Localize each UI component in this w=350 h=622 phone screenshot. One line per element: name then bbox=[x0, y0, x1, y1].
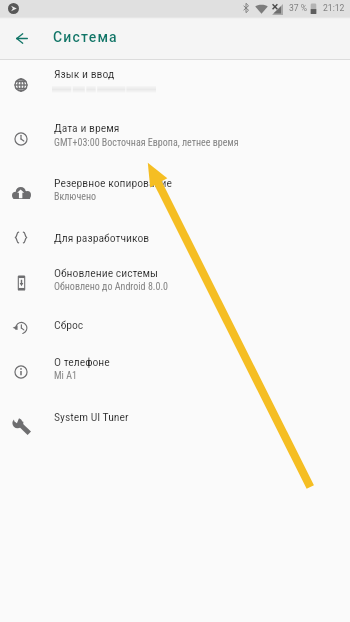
staticText: О телефоне bbox=[54, 355, 110, 369]
staticText: Сброс bbox=[54, 318, 84, 332]
button[interactable]: System UI Tuner bbox=[0, 392, 350, 443]
staticText: Язык и ввод bbox=[54, 67, 115, 81]
button[interactable]: Обновление системы bbox=[0, 258, 350, 302]
staticText: 37 % bbox=[289, 3, 308, 13]
staticText: Обновление системы bbox=[54, 266, 159, 280]
button[interactable]: Язык и ввод bbox=[0, 60, 350, 104]
button[interactable]: Дата и время bbox=[0, 104, 350, 158]
other: Запись экрана bbox=[8, 3, 19, 14]
button[interactable]: Для разработчиков bbox=[0, 213, 350, 258]
button[interactable]: Сброс bbox=[0, 301, 350, 346]
staticText: Mi A1 bbox=[54, 370, 77, 382]
staticText: Система bbox=[53, 29, 118, 45]
staticText: Обновлено до Android 8.0.0 bbox=[54, 281, 168, 293]
staticText: System UI Tuner bbox=[54, 410, 129, 424]
staticText: GMT+03:00 Восточная Европа, летнее время bbox=[54, 137, 239, 149]
button[interactable]: Назад bbox=[8, 24, 36, 52]
staticText: Резервное копирование bbox=[54, 176, 172, 190]
staticText: Для разработчиков bbox=[54, 231, 150, 245]
staticText: 21:12 bbox=[323, 3, 345, 13]
button[interactable]: О телефоне bbox=[0, 346, 350, 392]
staticText: Дата и время bbox=[54, 121, 120, 135]
button[interactable]: Резервное копирование bbox=[0, 158, 350, 213]
staticText: Включено bbox=[54, 191, 97, 203]
